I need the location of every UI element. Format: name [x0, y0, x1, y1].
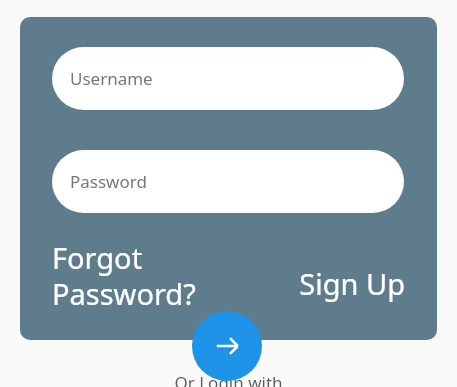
staticText: Username: [70, 67, 153, 90]
staticText: Password: [70, 170, 147, 193]
button[interactable]: Forgot Password?: [52, 238, 202, 310]
button[interactable]: Login: [192, 311, 262, 381]
staticText: Or Login with: [174, 371, 283, 387]
button[interactable]: Sign Up: [275, 262, 405, 304]
staticText: Forgot Password?: [52, 238, 202, 310]
button[interactable]: Username: [52, 47, 404, 110]
staticText: Sign Up: [299, 264, 405, 303]
button[interactable]: Password: [52, 150, 404, 213]
